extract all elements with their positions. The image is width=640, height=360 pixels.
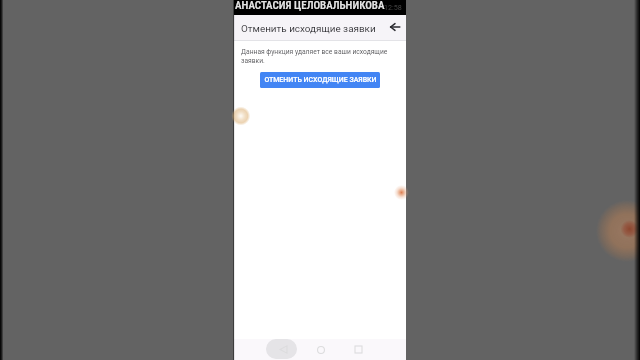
button[interactable]: Обзор	[345, 339, 371, 360]
button[interactable]: Назад	[270, 339, 296, 360]
button[interactable]: Назад	[385, 17, 405, 37]
button[interactable]: Главная	[308, 339, 334, 360]
staticText: АНАСТАСИЯ ЦЕЛОВАЛЬНИКОВА	[235, 0, 385, 12]
staticText: Отменить исходящие заявки	[241, 23, 376, 35]
staticText: Данная функция удаляет все ваши исходящи…	[241, 48, 401, 64]
button[interactable]: ОТМЕНИТЬ ИСХОДЯЩИЕ ЗАЯВКИ	[260, 72, 380, 88]
staticText: ОТМЕНИТЬ ИСХОДЯЩИЕ ЗАЯВКИ	[264, 76, 377, 84]
staticText: 12:58	[384, 3, 402, 11]
